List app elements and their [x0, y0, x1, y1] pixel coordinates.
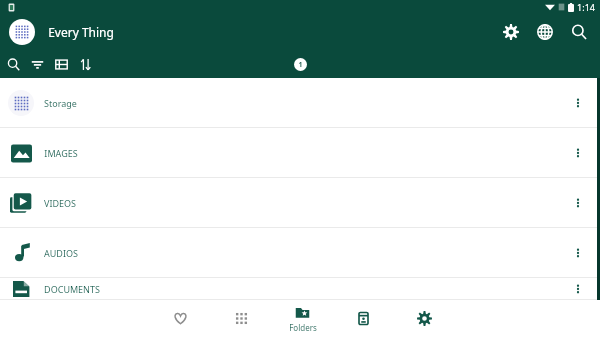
button[interactable]: More options for Storage: [563, 80, 593, 126]
button[interactable]: Search: [562, 15, 596, 49]
staticText: DOCUMENTS: [44, 283, 100, 295]
button[interactable]: Folders: [272, 300, 333, 337]
button[interactable]: More options for AUDIOS: [563, 230, 593, 276]
button[interactable]: Storage: [0, 78, 600, 128]
staticText: VIDEOS: [44, 197, 76, 209]
button[interactable]: Sort: [73, 52, 97, 76]
staticText: 1:14: [577, 1, 595, 13]
button[interactable]: Settings: [494, 15, 528, 49]
staticText: IMAGES: [44, 147, 78, 159]
button[interactable]: IMAGES: [0, 128, 600, 178]
button[interactable]: More options for VIDEOS: [563, 180, 593, 226]
button[interactable]: Language: [528, 15, 562, 49]
button[interactable]: More options for DOCUMENTS: [563, 278, 593, 299]
button[interactable]: Filter: [25, 52, 49, 76]
staticText: Folders: [289, 322, 317, 333]
staticText: Every Thing: [48, 24, 114, 40]
button[interactable]: Archive: [333, 300, 394, 337]
button[interactable]: More options for IMAGES: [563, 130, 593, 176]
staticText: AUDIOS: [44, 247, 78, 259]
button[interactable]: AUDIOS: [0, 228, 600, 278]
button[interactable]: Favourites: [150, 300, 211, 337]
button[interactable]: Page 1: [294, 58, 307, 71]
button[interactable]: Apps: [211, 300, 272, 337]
button[interactable]: Search files: [1, 52, 25, 76]
button[interactable]: App icon: [9, 19, 35, 45]
button[interactable]: Settings: [394, 300, 455, 337]
staticText: Storage: [44, 97, 77, 109]
button[interactable]: DOCUMENTS: [0, 278, 600, 300]
button[interactable]: View mode: [49, 52, 73, 76]
button[interactable]: VIDEOS: [0, 178, 600, 228]
staticText: 1: [298, 60, 303, 70]
